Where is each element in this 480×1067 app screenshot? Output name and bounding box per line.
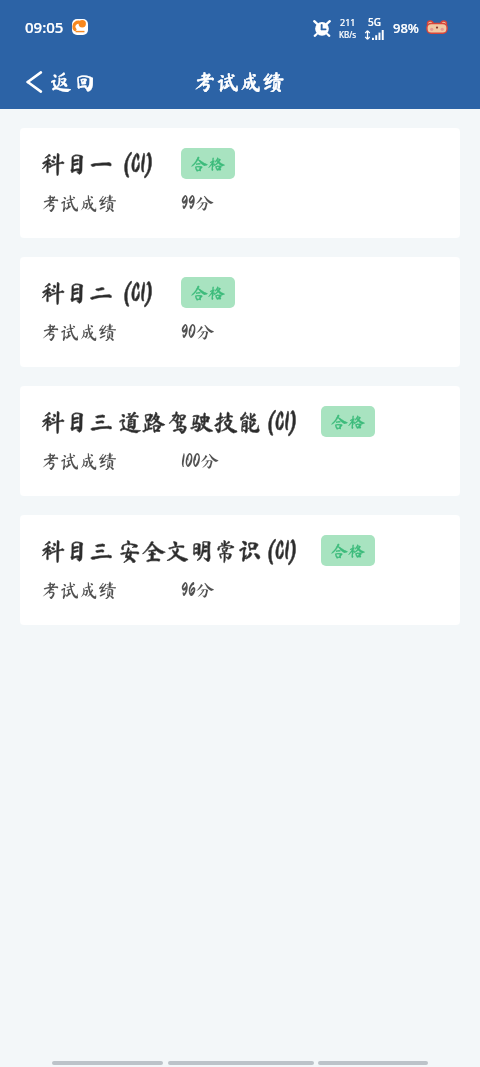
staticText: 合格 [191, 284, 225, 301]
staticText: 科目三 安全文明常识 (C1) [41, 539, 298, 563]
staticText: 科目一 (C1) [41, 152, 154, 176]
staticText: 99分 [181, 193, 215, 212]
staticText: 科目三 道路驾驶技能 (C1) [41, 410, 298, 434]
staticText: 合格 [331, 542, 365, 559]
staticText: 返回 [50, 71, 99, 93]
staticText: 考试成绩 [41, 322, 118, 341]
button[interactable]: Back [318, 1061, 428, 1065]
button[interactable]: 合格 [181, 148, 235, 179]
staticText: 考试成绩 [194, 71, 286, 93]
staticText: 合格 [191, 155, 225, 172]
staticText: 5G [368, 15, 381, 29]
staticText: 09:05 [25, 17, 64, 37]
staticText: 考试成绩 [41, 193, 118, 212]
staticText: 90分 [181, 322, 215, 341]
button[interactable]: 科目一 (C1) [20, 128, 460, 238]
button[interactable]: 科目三 安全文明常识 (C1) [20, 515, 460, 625]
staticText: 合格 [331, 542, 365, 559]
staticText: 100分 [181, 451, 220, 470]
staticText: 科目二 (C1) [41, 281, 154, 305]
staticText: 考试成绩 [194, 71, 286, 93]
button[interactable]: Recents [52, 1061, 163, 1065]
button[interactable]: 科目三 道路驾驶技能 (C1) [20, 386, 460, 496]
staticText: 211 [340, 16, 356, 28]
button[interactable]: Back [0, 62, 113, 102]
staticText: KB/s [339, 29, 356, 40]
staticText: 合格 [331, 413, 365, 430]
staticText: 考试成绩 [41, 451, 118, 470]
other: Alarm [314, 20, 330, 36]
button[interactable]: 科目二 (C1) [20, 257, 460, 367]
button[interactable]: 合格 [181, 277, 235, 308]
staticText: 98% [393, 19, 419, 37]
staticText: 科目一 (C1) [41, 152, 154, 176]
staticText: 合格 [191, 284, 225, 301]
staticText: 科目三 安全文明常识 (C1) [41, 539, 298, 563]
button[interactable]: Home [168, 1061, 314, 1065]
staticText: 合格 [331, 413, 365, 430]
other: Back [22, 70, 44, 94]
staticText: 科目三 道路驾驶技能 (C1) [41, 410, 298, 434]
staticText: 考试成绩 [41, 580, 118, 599]
button[interactable]: 合格 [321, 535, 375, 566]
staticText: 科目二 (C1) [41, 281, 154, 305]
button[interactable]: 合格 [321, 406, 375, 437]
staticText: 合格 [191, 155, 225, 172]
staticText: 96分 [181, 580, 215, 599]
